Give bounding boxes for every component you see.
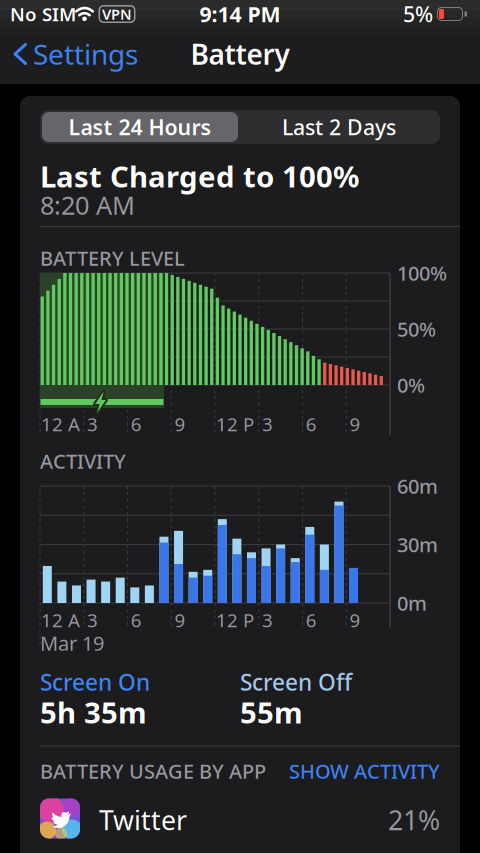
staticText: SHOW ACTIVITY	[289, 758, 440, 784]
staticText: 6	[306, 412, 317, 436]
staticText: 6	[131, 412, 142, 436]
staticText: 0%	[397, 372, 425, 398]
staticText: 6	[131, 608, 142, 632]
staticText: 5%	[403, 0, 433, 28]
button[interactable]: Last 2 Days	[241, 112, 437, 142]
staticText: Screen Off	[240, 667, 352, 697]
staticText: Screen On	[40, 667, 150, 697]
staticText: 12 A	[41, 608, 80, 632]
staticText: 50%	[397, 316, 436, 342]
staticText: VPN	[102, 4, 132, 24]
staticText: Battery	[190, 35, 289, 73]
staticText: Last 24 Hours	[68, 113, 211, 141]
button[interactable]: Twitter	[0, 0, 480, 853]
staticText: 100%	[397, 260, 447, 286]
staticText: 60m	[397, 473, 438, 499]
staticText: Last 2 Days	[282, 113, 396, 141]
staticText: 3	[87, 608, 98, 632]
staticText: BATTERY LEVEL	[40, 245, 185, 271]
staticText: 9	[349, 608, 360, 632]
staticText: 9	[349, 412, 360, 436]
staticText: 9	[174, 608, 185, 632]
staticText: 0m	[397, 590, 427, 616]
button[interactable]: SHOW ACTIVITY	[240, 758, 440, 784]
staticText: 12 P	[216, 608, 254, 632]
staticText: Last Charged to 100%	[40, 156, 359, 195]
staticText: 9	[174, 412, 185, 436]
staticText: No SIM	[10, 2, 76, 26]
staticText: 6	[306, 608, 317, 632]
staticText: Twitter	[99, 802, 187, 838]
staticText: 21%	[388, 802, 440, 838]
staticText: Settings	[33, 35, 138, 73]
staticText: 55m	[240, 692, 303, 731]
staticText: 8:20 AM	[40, 188, 135, 222]
staticText: Mar 19	[40, 630, 104, 656]
staticText: 3	[262, 608, 273, 632]
button[interactable]: Last 24 Hours	[42, 112, 238, 142]
staticText: 9:14 PM	[199, 0, 280, 28]
staticText: BATTERY USAGE BY APP	[40, 758, 266, 784]
staticText: 5h 35m	[40, 692, 147, 731]
staticText: 3	[262, 412, 273, 436]
staticText: 12 P	[216, 412, 254, 436]
staticText: 3	[87, 412, 98, 436]
staticText: 30m	[397, 531, 438, 558]
staticText: 12 A	[41, 412, 80, 436]
button[interactable]: Settings	[0, 0, 480, 853]
staticText: ACTIVITY	[40, 448, 126, 474]
